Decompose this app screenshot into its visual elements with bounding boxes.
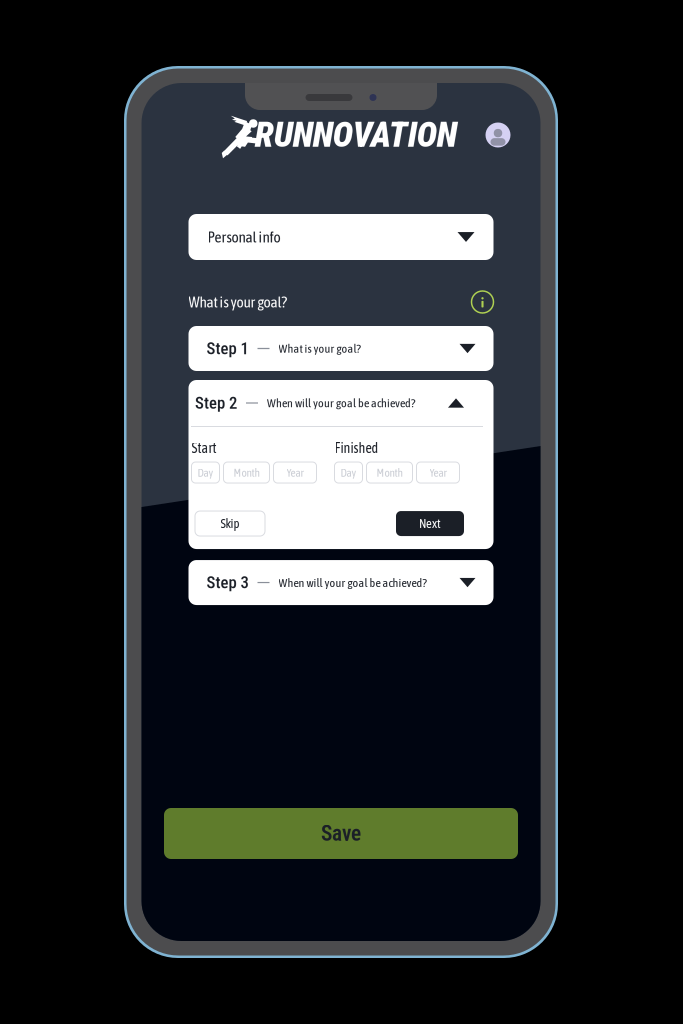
staticText: Month [233, 466, 259, 479]
button[interactable]: Profile [485, 122, 510, 147]
button[interactable]: Day [191, 462, 219, 483]
button[interactable]: Skip [195, 511, 265, 536]
staticText: Finished [334, 440, 378, 456]
staticText: Year [286, 466, 303, 479]
staticText: Skip [220, 516, 239, 531]
button[interactable]: Information [471, 291, 493, 313]
staticText: Step 3 [206, 573, 248, 592]
button[interactable]: Month [366, 462, 412, 483]
staticText: What is your goal? [278, 342, 360, 355]
button[interactable]: Year [273, 462, 316, 483]
staticText: Month [376, 466, 402, 479]
staticText: Day [197, 466, 213, 479]
button[interactable]: Day [334, 462, 362, 483]
staticText: RUNNOVATION [255, 115, 457, 155]
button[interactable]: Step 1 [188, 326, 493, 371]
button[interactable]: Next [396, 511, 464, 536]
button[interactable]: Month [223, 462, 269, 483]
button[interactable]: Save [164, 808, 518, 859]
staticText: When will your goal be achieved? [267, 396, 415, 410]
staticText: Year [429, 466, 446, 479]
staticText: Next [419, 516, 441, 531]
button[interactable]: Step 3 [188, 560, 493, 605]
button[interactable]: Personal info [188, 214, 493, 260]
staticText: When will your goal be achieved? [278, 576, 426, 589]
staticText: Personal info [207, 228, 280, 246]
button[interactable]: Year [416, 462, 459, 483]
staticText: Step 2 [195, 393, 237, 413]
staticText: Save [321, 821, 361, 846]
staticText: Step 1 [206, 339, 248, 358]
staticText: What is your goal? [188, 293, 287, 311]
staticText: Start [191, 440, 216, 456]
staticText: Day [340, 466, 356, 479]
